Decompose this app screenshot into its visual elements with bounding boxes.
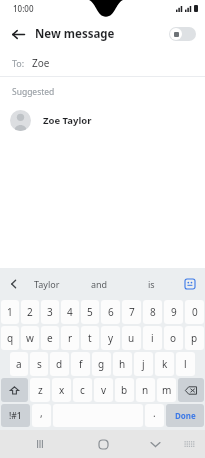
button[interactable]: k bbox=[155, 352, 174, 376]
button[interactable]: 2 bbox=[21, 300, 39, 324]
button[interactable]: Shift bbox=[1, 378, 28, 402]
button[interactable]: Taylor bbox=[20, 268, 73, 299]
staticText: k bbox=[162, 357, 168, 371]
button[interactable]: , bbox=[32, 404, 51, 427]
button[interactable]: r bbox=[61, 326, 79, 350]
staticText: y bbox=[108, 331, 114, 345]
button[interactable]: Stickers bbox=[182, 276, 198, 292]
staticText: b bbox=[121, 383, 128, 397]
button[interactable]: More suggestions bbox=[5, 275, 23, 293]
button[interactable]: j bbox=[134, 352, 153, 376]
button[interactable]: is bbox=[125, 268, 177, 299]
button[interactable]: Done bbox=[166, 404, 204, 427]
staticText: f bbox=[79, 357, 83, 371]
button[interactable]: t bbox=[81, 326, 99, 350]
button[interactable]: To: bbox=[0, 50, 205, 76]
button[interactable]: Toggle option bbox=[169, 27, 196, 41]
staticText: . bbox=[153, 406, 156, 420]
staticText: 2 bbox=[27, 305, 33, 319]
staticText: e bbox=[47, 331, 53, 345]
staticText: a bbox=[16, 357, 22, 371]
button[interactable]: 7 bbox=[122, 300, 141, 324]
staticText: z bbox=[38, 383, 43, 397]
button[interactable]: 9 bbox=[164, 300, 183, 324]
button[interactable]: e bbox=[41, 326, 59, 350]
staticText: Taylor bbox=[34, 278, 60, 290]
staticText: To: bbox=[12, 57, 25, 69]
staticText: 0 bbox=[192, 305, 198, 319]
button[interactable]: . bbox=[145, 404, 164, 427]
button[interactable]: 1 bbox=[1, 300, 19, 324]
staticText: g bbox=[98, 357, 105, 371]
button[interactable]: x bbox=[52, 378, 71, 402]
staticText: q bbox=[7, 331, 14, 345]
staticText: i bbox=[151, 331, 154, 345]
button[interactable]: c bbox=[73, 378, 92, 402]
staticText: m bbox=[162, 383, 172, 397]
button[interactable]: w bbox=[21, 326, 39, 350]
button[interactable]: Backspace bbox=[178, 378, 204, 402]
staticText: t bbox=[88, 331, 92, 345]
staticText: 8 bbox=[150, 305, 156, 319]
staticText: 5 bbox=[87, 305, 93, 319]
staticText: h bbox=[119, 357, 126, 371]
staticText: r bbox=[68, 331, 73, 345]
staticText: and bbox=[91, 278, 108, 290]
button[interactable]: 3 bbox=[41, 300, 59, 324]
staticText: 10:00 bbox=[13, 3, 34, 14]
staticText: , bbox=[40, 406, 43, 420]
staticText: w bbox=[26, 331, 34, 345]
button[interactable]: h bbox=[113, 352, 132, 376]
button[interactable]: m bbox=[157, 378, 176, 402]
staticText: !#1 bbox=[9, 410, 22, 422]
button[interactable]: Back bbox=[5, 21, 31, 47]
button[interactable]: i bbox=[143, 326, 162, 350]
button[interactable]: n bbox=[136, 378, 155, 402]
staticText: u bbox=[128, 331, 135, 345]
button[interactable]: f bbox=[71, 352, 90, 376]
button[interactable]: q bbox=[1, 326, 19, 350]
button[interactable]: !#1 bbox=[1, 404, 30, 427]
staticText: 9 bbox=[171, 305, 177, 319]
button[interactable]: z bbox=[30, 378, 50, 402]
button[interactable]: 8 bbox=[143, 300, 162, 324]
button[interactable]: y bbox=[101, 326, 120, 350]
staticText: p bbox=[191, 331, 198, 345]
button[interactable]: Hide keyboard bbox=[145, 434, 165, 454]
staticText: 6 bbox=[108, 305, 114, 319]
staticText: Zoe bbox=[32, 56, 50, 70]
button[interactable]: 6 bbox=[101, 300, 120, 324]
staticText: 7 bbox=[129, 305, 135, 319]
button[interactable]: Home bbox=[93, 434, 113, 454]
button[interactable]: 4 bbox=[61, 300, 79, 324]
button[interactable]: s bbox=[30, 352, 48, 376]
button[interactable]: 5 bbox=[81, 300, 99, 324]
staticText: c bbox=[80, 383, 85, 397]
button[interactable]: u bbox=[122, 326, 141, 350]
button[interactable]: and bbox=[73, 268, 125, 299]
staticText: l bbox=[184, 357, 187, 371]
staticText: v bbox=[101, 383, 107, 397]
button[interactable]: a bbox=[10, 352, 28, 376]
staticText: j bbox=[142, 357, 145, 371]
staticText: n bbox=[142, 383, 149, 397]
button[interactable]: l bbox=[176, 352, 195, 376]
button[interactable]: Zoe Taylor bbox=[0, 106, 205, 134]
button[interactable]: g bbox=[92, 352, 111, 376]
button[interactable]: Recent apps bbox=[30, 434, 50, 454]
button[interactable]: 0 bbox=[185, 300, 204, 324]
staticText: 1 bbox=[7, 305, 13, 319]
button[interactable]: Change keyboard bbox=[179, 434, 199, 454]
button[interactable]: p bbox=[185, 326, 204, 350]
button[interactable]: d bbox=[50, 352, 69, 376]
staticText: is bbox=[148, 278, 155, 290]
staticText: o bbox=[170, 331, 177, 345]
button[interactable]: o bbox=[164, 326, 183, 350]
button[interactable]: v bbox=[94, 378, 113, 402]
staticText: Zoe Taylor bbox=[43, 114, 92, 127]
staticText: d bbox=[56, 357, 63, 371]
staticText: 3 bbox=[47, 305, 53, 319]
staticText: 4 bbox=[67, 305, 73, 319]
button[interactable]: b bbox=[115, 378, 134, 402]
